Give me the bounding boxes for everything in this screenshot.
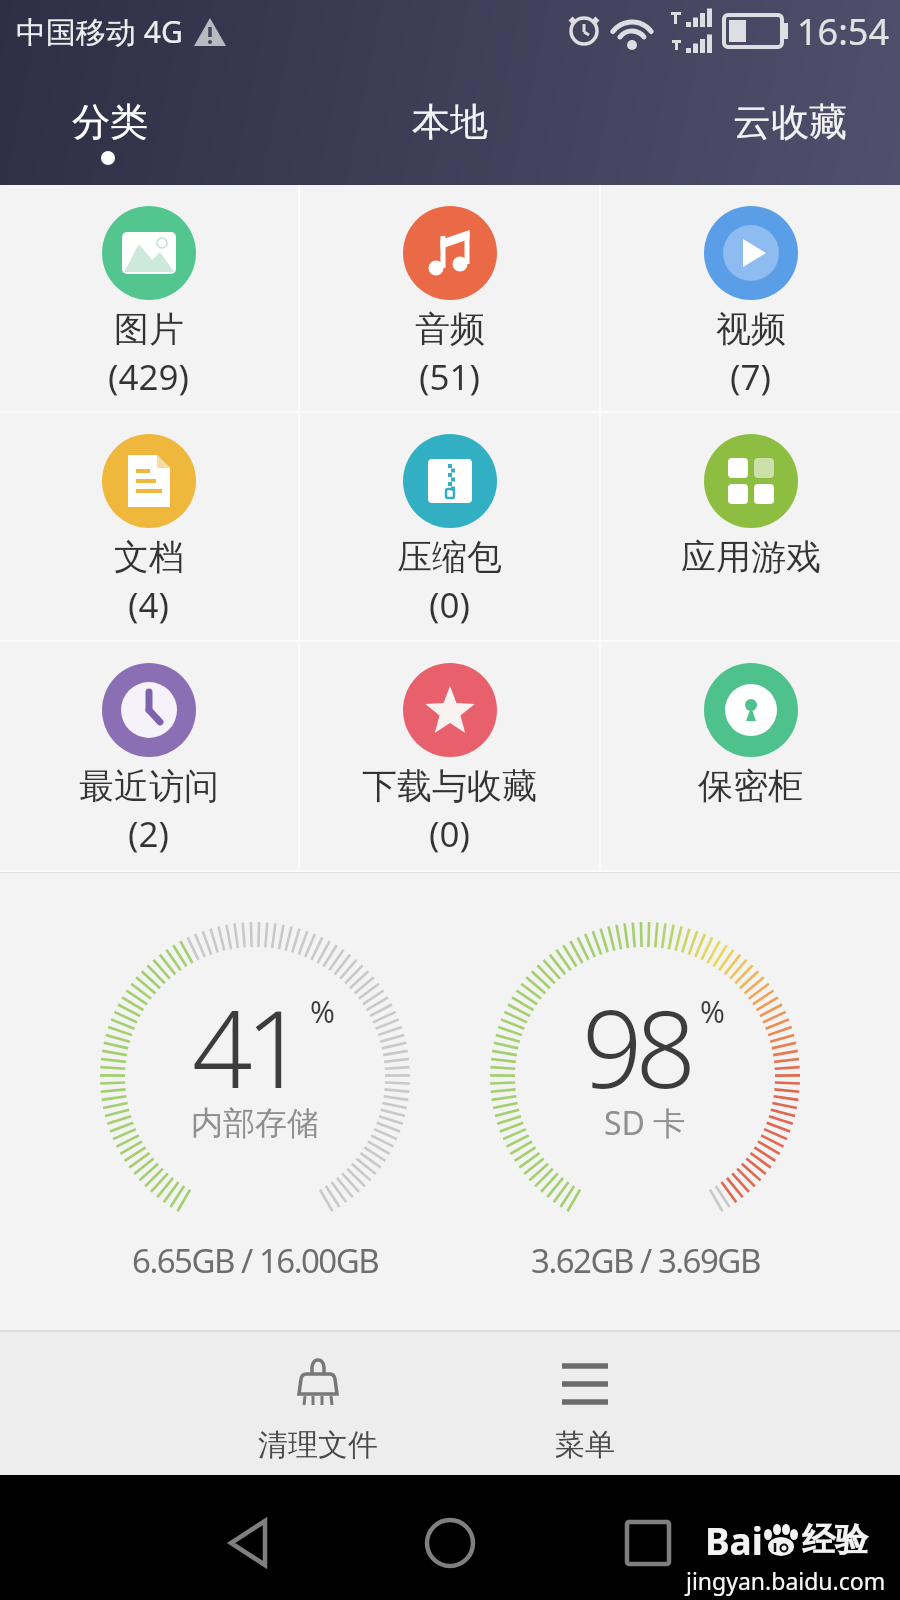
button[interactable]: 应用游戏 — [601, 413, 900, 640]
button[interactable]: 菜单 — [485, 1332, 685, 1475]
staticText: 分类 — [72, 98, 148, 146]
staticText: SD 卡 — [604, 1101, 686, 1145]
staticText: 最近访问 — [79, 764, 219, 808]
staticText: 98 — [582, 975, 690, 1095]
staticText: (7) — [730, 353, 772, 401]
staticText: Bai — [705, 1515, 763, 1565]
button[interactable]: 压缩包 — [300, 413, 599, 640]
staticText: 文档 — [114, 535, 184, 579]
staticText: (0) — [429, 810, 471, 858]
button[interactable]: 保密柜 — [601, 642, 900, 870]
staticText: % — [700, 991, 725, 1032]
button[interactable]: 下载与收藏 — [300, 642, 599, 870]
staticText: % — [310, 991, 335, 1032]
staticText: 云收藏 — [733, 98, 847, 146]
button[interactable]: 云收藏 — [700, 96, 880, 148]
staticText: (429) — [108, 353, 190, 401]
button[interactable]: 视频 — [601, 185, 900, 411]
staticText: 应用游戏 — [681, 535, 821, 579]
staticText: 内部存储 — [191, 1103, 319, 1143]
staticText: 3.62GB / 3.69GB — [531, 1238, 760, 1283]
button[interactable] — [598, 1489, 698, 1597]
button[interactable]: 本地 — [360, 96, 540, 148]
button[interactable]: 音频 — [300, 185, 599, 411]
button[interactable]: 清理文件 — [218, 1332, 418, 1475]
staticText: 下载与收藏 — [362, 764, 537, 808]
staticText: (51) — [419, 353, 481, 401]
staticText: 图片 — [114, 307, 184, 351]
button[interactable] — [198, 1489, 298, 1597]
button[interactable]: 文档 — [0, 413, 298, 640]
staticText: (4) — [128, 581, 170, 629]
staticText: 压缩包 — [397, 535, 502, 579]
staticText: 菜单 — [555, 1426, 615, 1464]
staticText: 中国移动 4G — [16, 11, 183, 52]
staticText: (0) — [429, 581, 471, 629]
staticText: 经验 — [802, 1519, 868, 1561]
staticText: jingyan.baidu.com — [686, 1565, 886, 1596]
staticText: (2) — [128, 810, 170, 858]
button[interactable]: 最近访问 — [0, 642, 298, 870]
button[interactable] — [400, 1489, 500, 1597]
staticText: 清理文件 — [258, 1426, 378, 1464]
button[interactable]: 分类 — [20, 96, 200, 148]
staticText: 视频 — [716, 307, 786, 351]
staticText: 保密柜 — [698, 764, 803, 808]
staticText: 音频 — [415, 307, 485, 351]
staticText: 16:54 — [797, 7, 890, 56]
staticText: 本地 — [412, 98, 488, 146]
staticText: 41 — [192, 975, 300, 1095]
staticText: 6.65GB / 16.00GB — [132, 1238, 379, 1283]
button[interactable]: 图片 — [0, 185, 298, 411]
